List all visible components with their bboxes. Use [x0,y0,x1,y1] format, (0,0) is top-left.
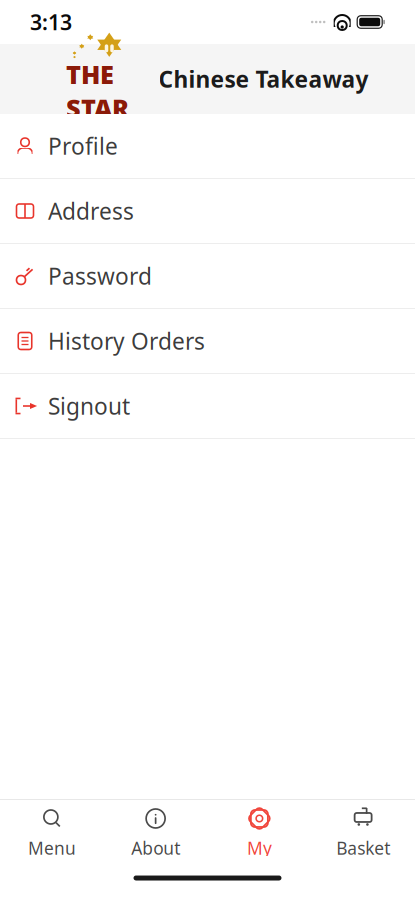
button[interactable]: About [104,810,208,856]
button[interactable]: Profile [0,114,415,178]
button[interactable]: Address [0,179,415,243]
staticText: Address [48,196,134,226]
button[interactable]: Basket [311,810,415,856]
button[interactable]: Menu [0,810,104,856]
button[interactable]: Password [0,244,415,308]
button[interactable]: History Orders [0,309,415,373]
staticText: Menu [28,836,76,859]
staticText: My [247,836,272,859]
staticText: Password [48,261,152,291]
staticText: History Orders [48,326,205,356]
staticText: Profile [48,131,118,161]
staticText: 3:13 [30,8,72,36]
staticText: Signout [48,391,130,421]
staticText: Basket [336,836,390,859]
button[interactable]: My [207,810,311,856]
staticText: THE STAR [66,57,129,125]
staticText: About [131,836,180,859]
staticText: Chinese Takeaway [158,64,368,94]
button[interactable]: Signout [0,374,415,438]
